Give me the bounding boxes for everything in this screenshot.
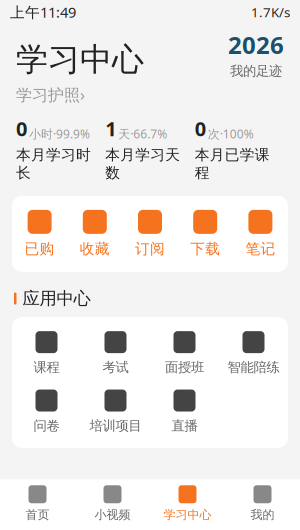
button[interactable]: 智能陪练 <box>219 331 288 375</box>
staticText: 问卷 <box>33 417 59 434</box>
staticText: 面授班 <box>165 359 204 375</box>
staticText: 天·66.7% <box>118 126 167 142</box>
button[interactable]: 课程 <box>12 331 81 375</box>
staticText: 学习中心 <box>16 40 144 79</box>
button[interactable]: 小视频 <box>75 485 150 522</box>
staticText: 小时·99.9% <box>29 126 90 142</box>
staticText: 首页 <box>25 507 49 522</box>
staticText: 收藏 <box>80 240 110 258</box>
button[interactable]: 笔记 <box>233 210 288 258</box>
staticText: 下载 <box>190 240 220 258</box>
staticText: 订阅 <box>135 240 165 258</box>
staticText: 应用中心 <box>22 288 90 309</box>
button[interactable]: 订阅 <box>122 210 178 258</box>
staticText: 0 <box>195 115 206 142</box>
staticText: 次·100% <box>208 126 254 142</box>
button[interactable]: 收藏 <box>67 210 122 258</box>
staticText: 1 <box>105 115 116 142</box>
staticText: 考试 <box>102 359 128 375</box>
button[interactable]: 下载 <box>178 210 233 258</box>
button[interactable]: 直播 <box>150 389 219 434</box>
staticText: 智能陪练 <box>227 359 279 375</box>
button[interactable]: 面授班 <box>150 331 219 375</box>
staticText: 培训项目 <box>89 417 141 434</box>
button[interactable]: 考试 <box>81 331 150 375</box>
staticText: 上午11:49 <box>10 2 76 22</box>
button[interactable]: 问卷 <box>12 389 81 434</box>
staticText: 2026 <box>228 29 284 61</box>
button[interactable]: 我的 <box>225 485 300 522</box>
staticText: 我的足迹 <box>230 63 282 79</box>
staticText: 课程 <box>33 359 59 375</box>
staticText: 0 <box>16 115 27 142</box>
staticText: 直播 <box>171 417 197 434</box>
staticText: 本月学习天数 <box>105 146 180 182</box>
staticText: 本月已学课程 <box>195 146 270 182</box>
button[interactable]: 首页 <box>0 485 75 522</box>
staticText: 学习护照› <box>16 84 85 105</box>
button[interactable]: 培训项目 <box>81 389 150 434</box>
staticText: 学习中心 <box>163 507 211 522</box>
button[interactable]: 学习中心 <box>150 485 225 522</box>
staticText: 小视频 <box>94 507 130 522</box>
staticText: 笔记 <box>245 240 275 258</box>
button[interactable]: 已购 <box>12 210 67 258</box>
staticText: 1.7K/s <box>251 3 290 21</box>
staticText: 已购 <box>25 240 55 258</box>
staticText: 本月学习时长 <box>16 146 91 182</box>
staticText: 我的 <box>250 507 274 522</box>
